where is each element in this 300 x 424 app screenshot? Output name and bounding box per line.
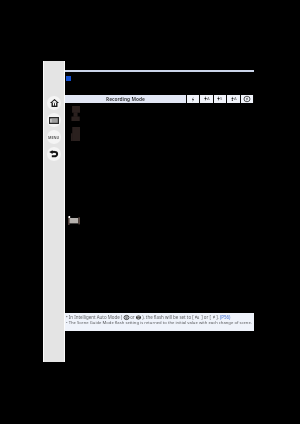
button[interactable]: Slow synchro (214, 95, 226, 103)
button[interactable]: Back (47, 147, 61, 161)
button[interactable]: Auto flash with red-eye reduction (200, 95, 213, 103)
button[interactable]: Slow synchro with red-eye reduction (227, 95, 240, 103)
button[interactable]: Recording Mode (65, 95, 186, 103)
staticText: or (129, 314, 136, 320)
button[interactable]: Screen display (47, 113, 61, 127)
staticText: A (197, 315, 200, 320)
staticText: S (220, 96, 223, 102)
button[interactable]: Home (47, 96, 61, 110)
staticText: ), the flash will be set to [ (141, 314, 195, 320)
button[interactable]: Forced flash on (187, 95, 199, 103)
staticText: ] or [ (200, 314, 213, 320)
staticText: • In Intelligent Auto Mode ( (66, 314, 124, 320)
staticText: ]. (215, 314, 220, 320)
staticText: MENU (48, 135, 60, 140)
staticText: Recording Mode (106, 96, 145, 103)
staticText: • The Scene Guide Mode flash setting is … (66, 320, 252, 326)
staticText: A (207, 96, 210, 102)
button[interactable]: Menu (47, 130, 61, 144)
button[interactable]: Forced flash off (241, 95, 253, 103)
staticText: (P56) (220, 314, 231, 320)
staticText: A (234, 96, 237, 102)
